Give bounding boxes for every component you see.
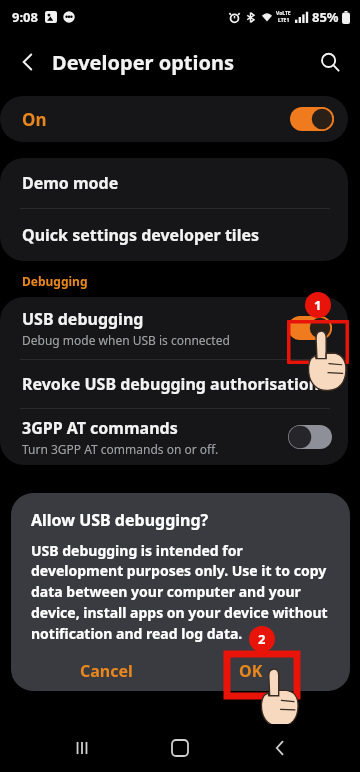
staticText: 85% bbox=[312, 8, 339, 26]
staticText: USB debugging is intended for developmen… bbox=[31, 541, 334, 644]
button[interactable]: 3GPP AT commands bbox=[0, 409, 348, 465]
button[interactable]: Back bbox=[260, 728, 300, 768]
button[interactable]: Home bbox=[160, 728, 200, 768]
staticText: Debug mode when USB is connected bbox=[22, 332, 230, 348]
button[interactable]: Search bbox=[310, 42, 350, 82]
button[interactable]: Recents bbox=[62, 728, 102, 768]
staticText: Demo mode bbox=[22, 172, 119, 194]
staticText: Turn 3GPP AT commands on or off. bbox=[22, 441, 219, 457]
staticText: Revoke USB debugging authorisations bbox=[22, 373, 328, 395]
staticText: 9:08 bbox=[12, 8, 38, 26]
button[interactable]: Revoke USB debugging authorisations bbox=[0, 360, 348, 408]
staticText: Quick settings developer tiles bbox=[22, 224, 259, 246]
button[interactable]: Back bbox=[8, 42, 48, 82]
staticText: On bbox=[22, 108, 47, 131]
button[interactable]: USB debugging bbox=[0, 297, 348, 359]
button[interactable]: Demo mode bbox=[0, 158, 348, 208]
staticText: 3GPP AT commands bbox=[22, 417, 178, 439]
button[interactable]: OK bbox=[181, 652, 321, 690]
staticText: Developer options bbox=[52, 49, 235, 76]
staticText: 2 bbox=[258, 630, 266, 648]
staticText: USB debugging bbox=[22, 308, 144, 330]
button[interactable]: On bbox=[0, 96, 348, 142]
staticText: Cancel bbox=[80, 660, 133, 682]
staticText: LTE1 bbox=[278, 17, 290, 24]
staticText: Allow USB debugging? bbox=[31, 509, 209, 531]
button[interactable]: Cancel bbox=[31, 652, 181, 690]
staticText: Debugging bbox=[22, 273, 88, 289]
staticText: VoLTE bbox=[276, 10, 291, 17]
staticText: OK bbox=[239, 660, 263, 682]
button[interactable]: Quick settings developer tiles bbox=[0, 209, 348, 261]
staticText: 1 bbox=[314, 296, 322, 314]
